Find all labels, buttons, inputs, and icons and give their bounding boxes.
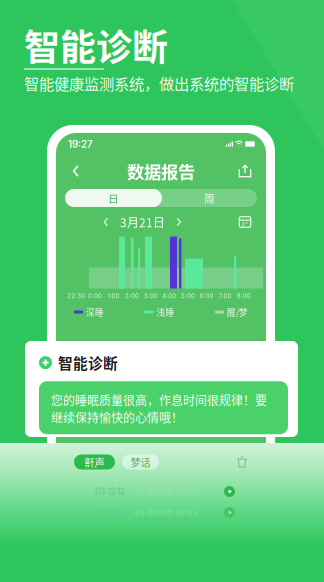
button[interactable]: 日 [65, 189, 162, 207]
button[interactable]: Next day [171, 214, 187, 230]
staticText: 智能健康监测系统，做出系统的智能诊断 [24, 72, 294, 94]
staticText: 6:00 [199, 292, 213, 300]
staticText: 鼾声 [84, 455, 104, 469]
staticText: 2:00 [125, 292, 139, 300]
staticText: 周 [204, 190, 215, 206]
staticText: 0:00 [88, 292, 102, 300]
button[interactable]: Calendar [236, 213, 254, 231]
staticText: 8:00 [237, 292, 251, 300]
button[interactable]: 鼾声 [74, 454, 115, 469]
staticText: 智能诊断 [24, 19, 168, 71]
staticText: 日 [108, 190, 119, 206]
staticText: 您的睡眠质量很高，作息时间很规律！要继续保持愉快的心情哦！ [51, 391, 267, 426]
staticText: 深睡 [86, 306, 104, 318]
staticText: 3月21日 [120, 213, 165, 231]
staticText: 03:12:12 [95, 486, 125, 497]
staticText: 醒/梦 [227, 306, 248, 318]
staticText: 19:27 [68, 138, 93, 150]
button[interactable]: Back [63, 158, 89, 184]
staticText: 梦话 [130, 455, 150, 469]
staticText: 浅睡 [156, 306, 174, 318]
button[interactable]: 03:12:12 [56, 505, 266, 519]
staticText: 22:30 [67, 292, 85, 300]
button[interactable]: 梦话 [122, 454, 159, 469]
staticText: 03:12:12 [95, 507, 125, 518]
button[interactable]: 周 [162, 189, 257, 207]
button[interactable]: Delete recordings [233, 453, 251, 471]
button[interactable]: Previous day [98, 214, 114, 230]
staticText: 数据报告 [127, 158, 195, 184]
button[interactable]: 03:12:12 [56, 484, 266, 498]
staticText: 1:00 [107, 292, 119, 300]
staticText: 4:00 [162, 292, 176, 300]
button[interactable]: Share [232, 158, 258, 184]
staticText: 5:00 [181, 292, 195, 300]
staticText: 3:00 [144, 292, 158, 300]
staticText: 智能诊断 [58, 352, 118, 373]
staticText: 7:00 [219, 292, 232, 300]
